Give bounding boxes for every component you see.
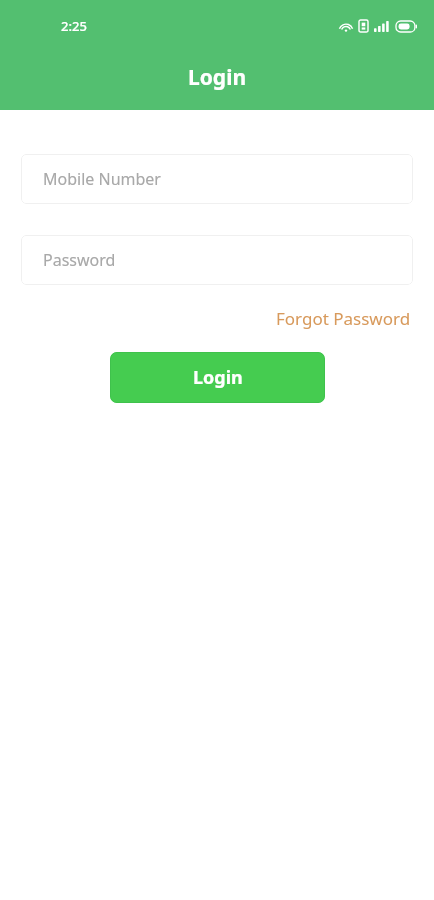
button[interactable]: Login	[110, 352, 325, 403]
other: Cellular signal	[374, 21, 389, 32]
staticText: Forgot Password	[276, 307, 411, 330]
button[interactable]: Forgot Password	[274, 303, 413, 334]
staticText: Mobile Number	[43, 168, 161, 190]
other: Wi-Fi	[339, 21, 353, 32]
staticText: Login	[193, 365, 243, 390]
staticText: 2:25	[61, 17, 87, 35]
button[interactable]: Mobile Number	[21, 154, 413, 204]
staticText: Login	[188, 63, 247, 92]
other: Battery	[396, 21, 417, 32]
button[interactable]: Password	[21, 235, 413, 285]
staticText: Password	[43, 249, 116, 271]
other: Network status	[359, 20, 368, 32]
